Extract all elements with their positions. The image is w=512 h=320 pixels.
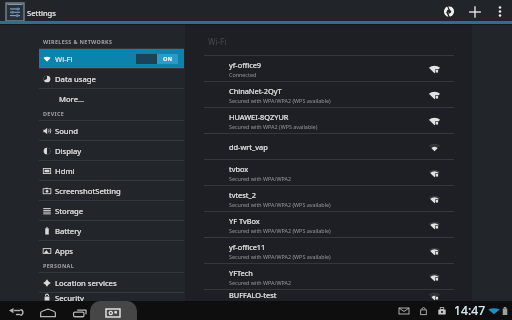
button[interactable]: yf-office11 xyxy=(185,238,472,263)
button[interactable]: Email xyxy=(398,301,410,320)
staticText: Security xyxy=(55,293,84,301)
staticText: YFTech xyxy=(229,268,253,278)
button[interactable]: Scan xyxy=(436,0,462,21)
button[interactable]: Screenshot xyxy=(101,301,125,320)
staticText: Secured with WPA/WPA2 xyxy=(229,175,292,182)
staticText: Settings xyxy=(27,8,56,18)
staticText: Hdmi xyxy=(55,166,75,176)
staticText: ChinaNet-2QyT xyxy=(229,86,282,96)
staticText: 14:47 xyxy=(454,302,486,319)
staticText: Secured with WPA/WPA2 (WPS available) xyxy=(229,253,331,260)
staticText: Secured with WPA/WPA2 (WPS available) xyxy=(229,227,331,234)
staticText: Data usage xyxy=(55,74,96,84)
button[interactable]: Add network xyxy=(462,0,488,21)
button[interactable]: Battery xyxy=(39,221,184,240)
button[interactable]: Apps xyxy=(39,241,184,260)
staticText: HUAWEI-8QZYUR xyxy=(229,112,289,122)
staticText: ON xyxy=(163,55,172,63)
staticText: Storage xyxy=(55,206,84,216)
button[interactable]: Location services xyxy=(39,273,184,292)
staticText: YF TvBox xyxy=(229,216,260,226)
button[interactable]: tvtest_2 xyxy=(185,186,472,211)
staticText: yf-office11 xyxy=(229,242,266,252)
staticText: Connected xyxy=(229,71,257,78)
button[interactable]: Recent apps xyxy=(69,301,91,320)
button[interactable]: Back xyxy=(4,301,28,320)
button[interactable]: YF TvBox xyxy=(185,212,472,237)
staticText: Apps xyxy=(55,246,74,256)
button[interactable]: ScreenshotSetting xyxy=(39,181,184,200)
button[interactable]: dd-wrt_vap xyxy=(185,134,472,159)
staticText: DEVICE xyxy=(43,110,65,117)
button[interactable]: Security xyxy=(39,293,184,301)
button[interactable]: Data usage xyxy=(39,69,184,88)
button[interactable]: ChinaNet-2QyT xyxy=(185,82,472,107)
button[interactable]: BUFFALO-test xyxy=(185,290,472,301)
button[interactable]: yf-office9 xyxy=(185,56,472,81)
staticText: BUFFALO-test xyxy=(229,290,277,300)
button[interactable]: Sound xyxy=(39,121,184,140)
button[interactable]: tvbox xyxy=(185,160,472,185)
staticText: Display xyxy=(55,146,82,156)
staticText: Battery xyxy=(55,226,82,236)
staticText: yf-office9 xyxy=(229,60,262,70)
button[interactable]: More options xyxy=(488,0,511,21)
button[interactable]: Wi-Fi on xyxy=(136,54,178,64)
button[interactable]: Home xyxy=(36,301,60,320)
button[interactable]: Hdmi xyxy=(39,161,184,180)
button[interactable]: Storage xyxy=(39,201,184,220)
staticText: ScreenshotSetting xyxy=(55,186,121,196)
staticText: tvbox xyxy=(229,164,249,174)
staticText: Location services xyxy=(55,278,117,288)
button[interactable]: Display xyxy=(39,141,184,160)
staticText: tvtest_2 xyxy=(229,190,256,200)
staticText: WIRELESS & NETWORKS xyxy=(43,38,113,45)
staticText: PERSONAL xyxy=(43,262,75,269)
staticText: Secured with WPA/WPA2 (WPS available) xyxy=(229,97,331,104)
staticText: dd-wrt_vap xyxy=(229,142,268,152)
button[interactable]: Settings xyxy=(6,3,24,21)
button[interactable]: More... xyxy=(39,89,184,108)
staticText: Secured with WPA/WPA2 xyxy=(229,279,292,286)
button[interactable]: Wi-Fi xyxy=(39,49,184,68)
staticText: Sound xyxy=(55,126,79,136)
staticText: More... xyxy=(59,94,85,104)
staticText: Wi-Fi xyxy=(55,54,73,64)
button[interactable]: YFTech xyxy=(185,264,472,289)
staticText: Secured with WPA/WPA2 (WPS available) xyxy=(229,201,331,208)
button[interactable]: HUAWEI-8QZYUR xyxy=(185,108,472,133)
staticText: Wi-Fi xyxy=(208,36,227,47)
staticText: Secured with WPA2 (WPS available) xyxy=(229,123,318,130)
